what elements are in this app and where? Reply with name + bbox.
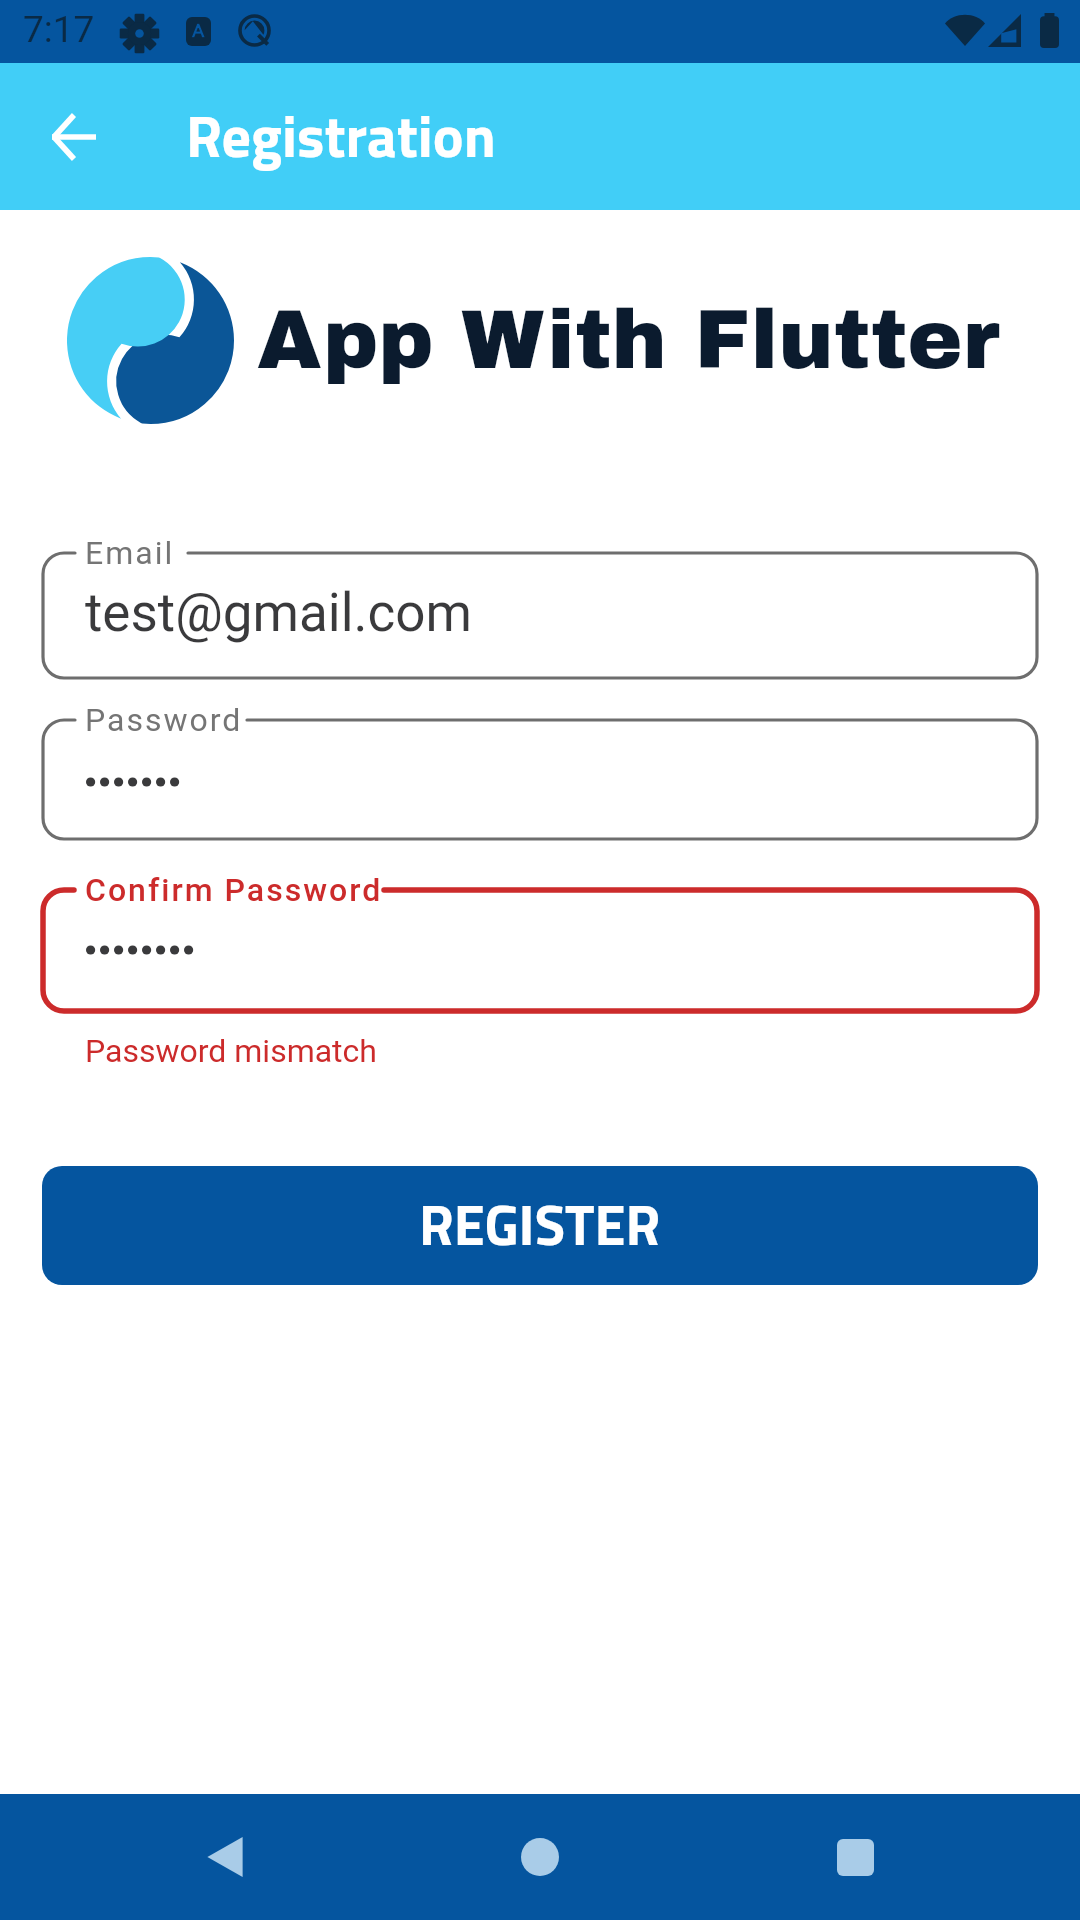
button[interactable] (43, 720, 1037, 839)
staticText: A (192, 19, 205, 41)
staticText: Email (85, 534, 175, 572)
button[interactable]: Home (495, 1812, 585, 1902)
staticText: Confirm Password (85, 871, 383, 909)
button[interactable]: Recent apps (810, 1812, 900, 1902)
staticText: test@gmail.com (85, 582, 472, 644)
staticText: 7:17 (23, 8, 95, 51)
staticText: Password (85, 701, 243, 739)
staticText: REGISTER (419, 1182, 661, 1267)
button[interactable]: REGISTER (42, 1166, 1038, 1285)
button[interactable] (43, 890, 1037, 1011)
staticText: App With Flutter (257, 295, 1000, 385)
staticText: Registration (186, 91, 496, 179)
button[interactable]: Back (22, 85, 126, 189)
button[interactable]: Back (180, 1812, 270, 1902)
button[interactable] (43, 553, 1037, 678)
staticText: Password mismatch (85, 1032, 377, 1070)
